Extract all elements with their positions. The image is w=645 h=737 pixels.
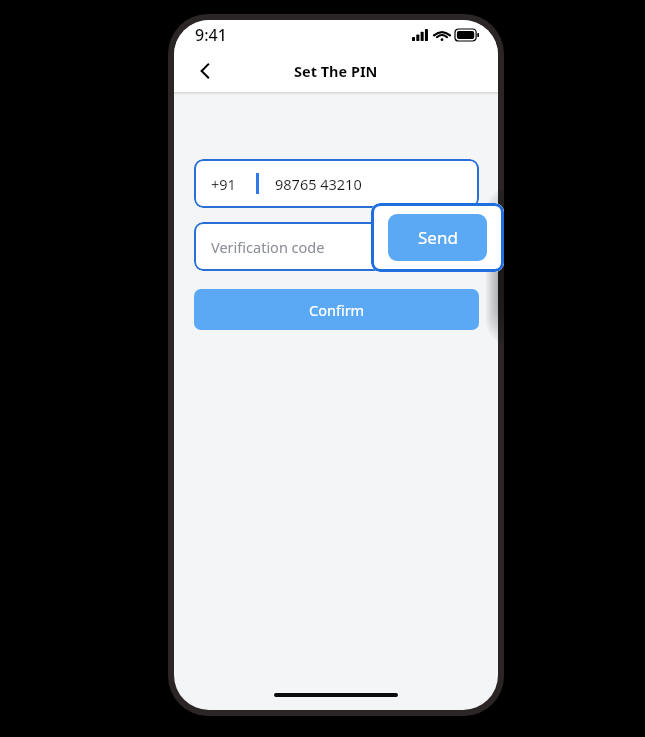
button[interactable]: Verification code <box>194 222 479 271</box>
staticText: Verification code <box>211 237 325 257</box>
button[interactable]: Send <box>388 214 487 261</box>
staticText: Confirm <box>309 300 365 320</box>
staticText: 98765 43210 <box>275 174 362 194</box>
button[interactable]: Confirm <box>194 289 479 330</box>
staticText: Send <box>418 226 458 249</box>
staticText: 9:41 <box>195 24 227 46</box>
staticText: Set The PIN <box>294 61 378 81</box>
button[interactable]: +91 <box>194 159 479 208</box>
staticText: +91 <box>211 174 236 194</box>
button[interactable]: Back <box>187 53 223 89</box>
